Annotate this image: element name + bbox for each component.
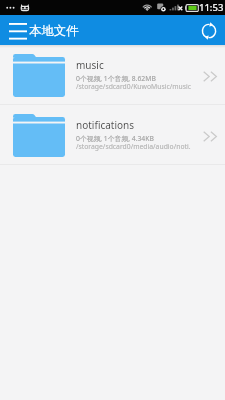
staticText: 11:53 [199, 1, 224, 14]
button[interactable]: notifications [0, 105, 225, 165]
staticText: /storage/sdcard0/media/audio/noti. [76, 142, 191, 151]
button[interactable]: Refresh [195, 15, 225, 45]
other: Open folder [197, 113, 225, 157]
staticText: music [76, 58, 104, 72]
staticText: 0个视频, 1个音频, 4.34KB [76, 134, 154, 143]
button[interactable]: Open navigation menu [0, 15, 30, 45]
staticText: 0个视频, 1个音频, 8.62MB [76, 74, 156, 83]
staticText: notifications [76, 118, 135, 132]
staticText: /storage/sdcard0/KuwoMusic/music [76, 82, 192, 91]
other: Open folder [197, 53, 225, 97]
button[interactable]: music [0, 45, 225, 105]
staticText: 本地文件 [29, 23, 79, 39]
